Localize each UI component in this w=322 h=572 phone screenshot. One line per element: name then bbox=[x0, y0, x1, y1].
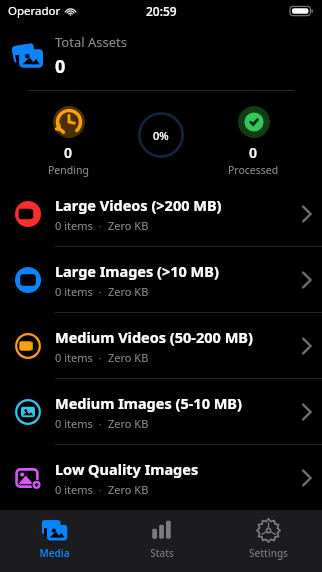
staticText: · bbox=[93, 482, 108, 497]
staticText: 20:59 bbox=[146, 3, 177, 19]
staticText: 0 items bbox=[55, 482, 93, 497]
other: Media library bbox=[13, 41, 43, 71]
staticText: Zero KB bbox=[108, 284, 149, 299]
staticText: · bbox=[93, 350, 108, 365]
staticText: Large Images (>10 MB) bbox=[55, 261, 219, 281]
staticText: Large Videos (>200 MB) bbox=[55, 195, 222, 215]
staticText: 0% bbox=[153, 128, 169, 143]
staticText: · bbox=[93, 284, 108, 299]
staticText: Total Assets bbox=[55, 33, 127, 51]
staticText: Low Quality Images bbox=[55, 459, 199, 479]
staticText: 0 items bbox=[55, 218, 93, 233]
button[interactable]: Large Images (>10 MB) bbox=[0, 247, 322, 312]
staticText: Settings bbox=[249, 546, 288, 560]
staticText: · bbox=[93, 416, 108, 431]
staticText: Operador bbox=[8, 3, 61, 19]
button[interactable]: Settings bbox=[215, 510, 322, 572]
button[interactable]: Media bbox=[0, 510, 108, 572]
staticText: Zero KB bbox=[108, 350, 149, 365]
staticText: Stats bbox=[150, 546, 174, 560]
staticText: Zero KB bbox=[108, 218, 149, 233]
button[interactable]: Stats bbox=[108, 510, 215, 572]
staticText: Zero KB bbox=[108, 416, 149, 431]
button[interactable]: Low Quality Images bbox=[0, 445, 322, 510]
staticText: 0 items bbox=[55, 416, 93, 431]
staticText: Media bbox=[39, 546, 70, 560]
staticText: Zero KB bbox=[108, 482, 149, 497]
staticText: Processed bbox=[228, 163, 279, 177]
staticText: · bbox=[93, 218, 108, 233]
staticText: Medium Images (5-10 MB) bbox=[55, 393, 242, 413]
staticText: 0 bbox=[249, 143, 258, 162]
staticText: Medium Videos (50-200 MB) bbox=[55, 327, 253, 347]
button[interactable]: Medium Images (5-10 MB) bbox=[0, 379, 322, 444]
button[interactable]: Media library bbox=[0, 22, 322, 90]
button[interactable]: Large Videos (>200 MB) bbox=[0, 181, 322, 246]
staticText: 0 items bbox=[55, 284, 93, 299]
staticText: 0 bbox=[64, 143, 73, 162]
button[interactable]: Medium Videos (50-200 MB) bbox=[0, 313, 322, 378]
staticText: 0 bbox=[55, 54, 66, 79]
staticText: 0 items bbox=[55, 350, 93, 365]
staticText: Pending bbox=[48, 163, 89, 177]
